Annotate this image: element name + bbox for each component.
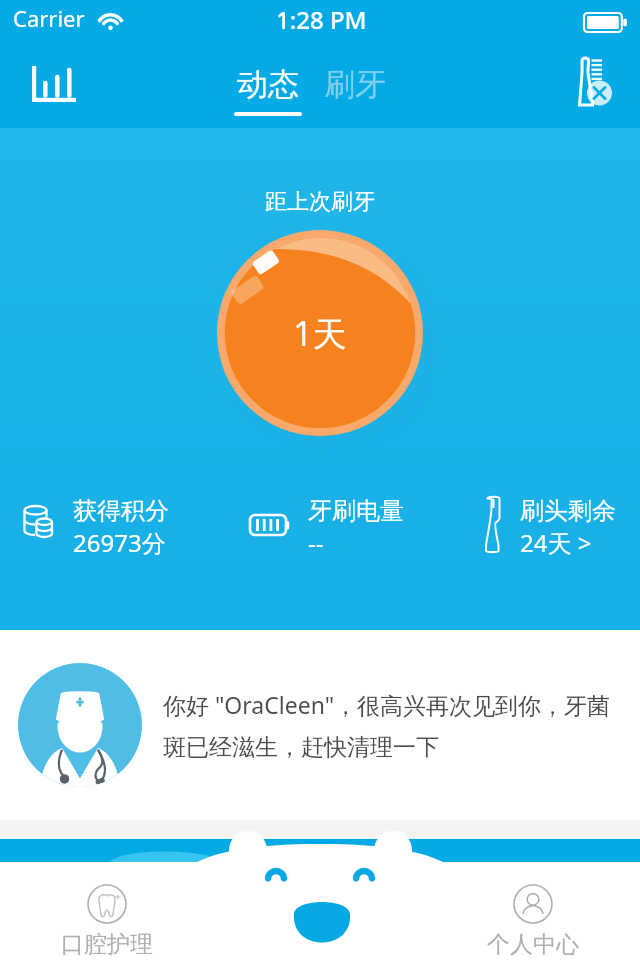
staticText: Carrier — [13, 3, 85, 33]
staticText: 刷头剩余 — [520, 496, 616, 526]
staticText: 口腔护理 — [61, 930, 153, 959]
staticText: 刷牙 — [324, 65, 386, 104]
button[interactable]: 个人中心 — [453, 839, 613, 960]
button[interactable]: 动态 — [234, 44, 302, 128]
staticText: -- — [308, 526, 324, 559]
staticText: 1天 — [293, 310, 347, 356]
staticText: 26973分 — [73, 526, 166, 559]
staticText: 你好 "OraCleen"，很高兴再次见到你，牙菌斑已经滋生，赶快清理一下 — [163, 689, 628, 762]
button[interactable]: Statistics — [24, 54, 84, 114]
staticText: 1:28 PM — [276, 3, 367, 36]
button[interactable]: Toothbrush not connected — [576, 54, 640, 118]
staticText: 个人中心 — [487, 930, 579, 959]
button[interactable]: 口腔护理 — [27, 839, 187, 960]
staticText: 牙刷电量 — [308, 496, 404, 526]
button[interactable]: 刷头剩余 — [482, 476, 616, 566]
staticText: 24天 > — [520, 526, 592, 559]
button[interactable]: 牙刷电量 — [241, 476, 404, 566]
staticText: 动态 — [237, 65, 299, 104]
button[interactable]: 获得积分 — [18, 476, 169, 566]
staticText: 距上次刷牙 — [0, 188, 640, 216]
button[interactable]: 刷牙 — [324, 44, 386, 128]
staticText: 获得积分 — [73, 496, 169, 526]
